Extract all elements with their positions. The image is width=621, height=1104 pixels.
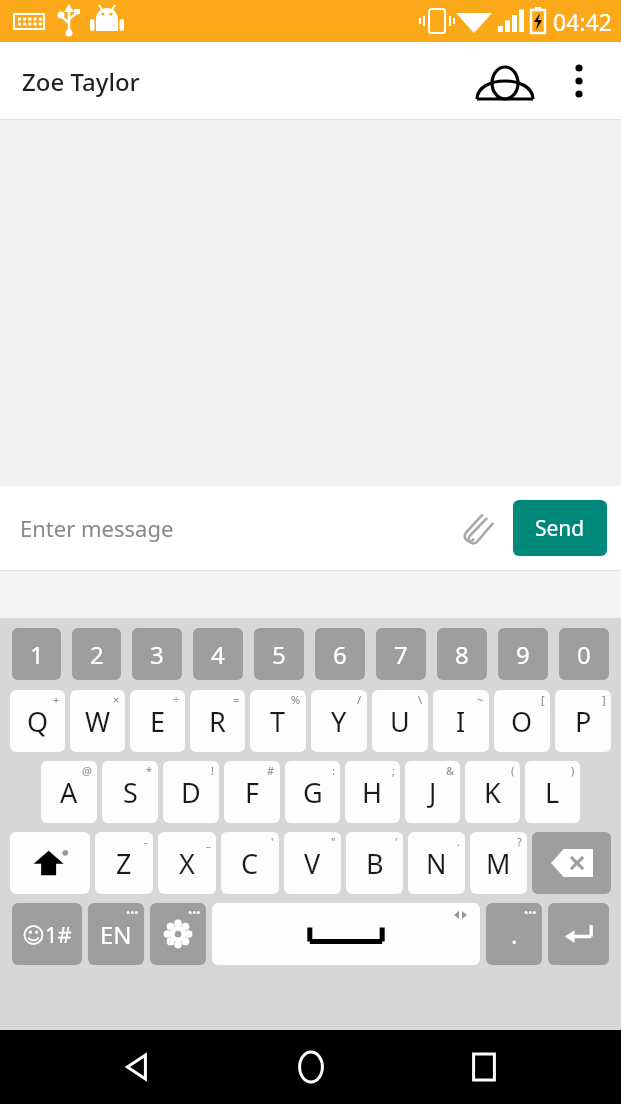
staticText: &: [446, 763, 455, 778]
staticText: W: [85, 703, 111, 740]
staticText: N: [426, 845, 447, 882]
button[interactable]: 4: [193, 628, 243, 680]
button[interactable]: A: [41, 761, 97, 823]
button[interactable]: F: [224, 761, 280, 823]
button[interactable]: 3: [132, 628, 182, 680]
staticText: ': [395, 834, 398, 849]
button[interactable]: R: [190, 690, 245, 752]
staticText: ): [571, 763, 575, 778]
staticText: #: [267, 763, 275, 778]
button[interactable]: 7: [376, 628, 426, 680]
button[interactable]: Home: [274, 1030, 348, 1104]
button[interactable]: Q: [10, 690, 65, 752]
staticText: *: [146, 763, 153, 778]
staticText: C: [241, 845, 259, 882]
button[interactable]: K: [465, 761, 520, 823]
button[interactable]: H: [345, 761, 400, 823]
button[interactable]: Recent apps: [447, 1030, 521, 1104]
staticText: P: [575, 703, 592, 740]
staticText: 4: [211, 638, 225, 671]
button[interactable]: 0: [559, 628, 609, 680]
button[interactable]: EN: [88, 903, 144, 965]
button[interactable]: 8: [437, 628, 487, 680]
staticText: .: [457, 834, 460, 849]
staticText: :: [332, 763, 335, 778]
staticText: I: [456, 703, 466, 740]
staticText: !: [211, 763, 214, 778]
staticText: ×: [113, 692, 120, 707]
button[interactable]: O: [494, 690, 550, 752]
button[interactable]: Space: [212, 903, 480, 965]
button[interactable]: Shift: [10, 832, 90, 894]
button[interactable]: B: [346, 832, 403, 894]
staticText: 7: [394, 638, 408, 671]
staticText: D: [181, 774, 201, 811]
button[interactable]: More options: [551, 53, 607, 109]
staticText: H: [362, 774, 383, 811]
staticText: %: [291, 692, 301, 707]
button[interactable]: Enter: [548, 903, 609, 965]
button[interactable]: D: [163, 761, 219, 823]
staticText: 04:42: [553, 6, 612, 37]
button[interactable]: J: [405, 761, 460, 823]
staticText: =: [233, 692, 240, 707]
staticText: ~: [477, 692, 484, 707]
button[interactable]: M: [470, 832, 527, 894]
staticText: ]: [602, 692, 606, 707]
button[interactable]: 9: [498, 628, 548, 680]
button[interactable]: G: [285, 761, 340, 823]
staticText: \: [418, 692, 423, 707]
button[interactable]: ☺1#: [12, 903, 82, 965]
button[interactable]: T: [250, 690, 306, 752]
button[interactable]: 1: [12, 628, 61, 680]
staticText: 2: [90, 638, 104, 671]
button[interactable]: V: [284, 832, 341, 894]
button[interactable]: Z: [95, 832, 153, 894]
staticText: S: [123, 774, 138, 811]
staticText: K: [484, 774, 501, 811]
button[interactable]: Send: [513, 500, 607, 556]
staticText: Y: [331, 703, 347, 740]
button[interactable]: E: [130, 690, 185, 752]
button[interactable]: P: [555, 690, 611, 752]
button[interactable]: Backspace: [532, 832, 611, 894]
staticText: Send: [535, 514, 585, 543]
staticText: Q: [27, 703, 49, 740]
staticText: •••: [524, 905, 537, 920]
staticText: F: [245, 774, 260, 811]
staticText: M: [486, 845, 511, 882]
button[interactable]: Back: [100, 1030, 174, 1104]
staticText: R: [209, 703, 226, 740]
staticText: ': [271, 834, 274, 849]
staticText: EN: [100, 918, 132, 951]
button[interactable]: L: [525, 761, 580, 823]
staticText: •••: [126, 905, 139, 920]
staticText: 9: [516, 638, 530, 671]
staticText: L: [545, 774, 560, 811]
button[interactable]: X: [158, 832, 216, 894]
staticText: •••: [188, 905, 201, 920]
button[interactable]: 2: [72, 628, 121, 680]
staticText: 8: [455, 638, 469, 671]
staticText: 3: [150, 638, 164, 671]
button[interactable]: C: [221, 832, 279, 894]
button[interactable]: 5: [254, 628, 304, 680]
button[interactable]: W: [70, 690, 125, 752]
staticText: V: [304, 845, 321, 882]
staticText: J: [429, 774, 437, 811]
button[interactable]: Contact profile: [477, 53, 533, 109]
button[interactable]: U: [372, 690, 428, 752]
button[interactable]: 6: [315, 628, 365, 680]
button[interactable]: I: [433, 690, 489, 752]
button[interactable]: N: [408, 832, 465, 894]
button[interactable]: Attach file: [451, 502, 503, 554]
button[interactable]: .: [486, 903, 542, 965]
staticText: Enter message: [20, 513, 174, 543]
staticText: ?: [517, 834, 522, 849]
staticText: [: [541, 692, 545, 707]
button[interactable]: Keyboard settings: [150, 903, 206, 965]
staticText: ": [331, 834, 336, 849]
button[interactable]: Y: [311, 690, 367, 752]
button[interactable]: S: [102, 761, 158, 823]
staticText: ;: [392, 763, 395, 778]
